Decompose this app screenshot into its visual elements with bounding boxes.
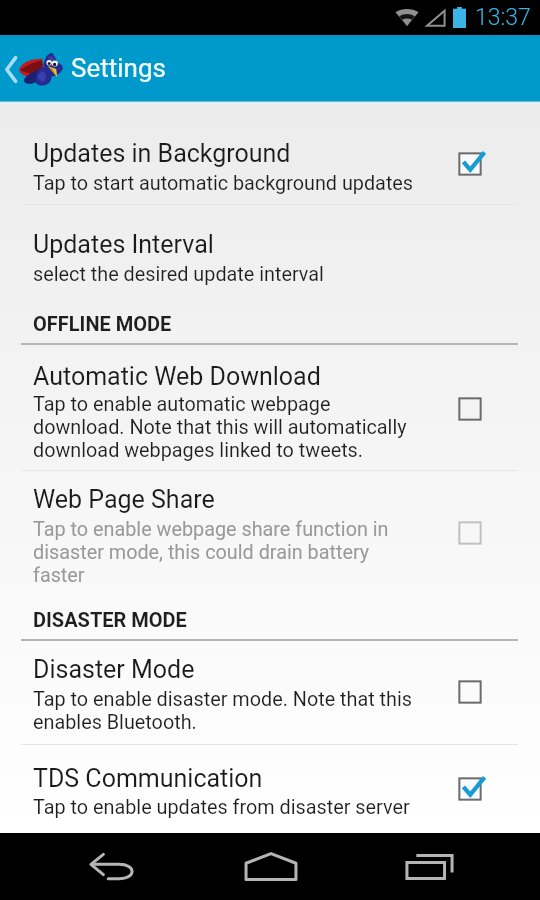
button[interactable]: Automatic Web Download [0, 362, 540, 462]
staticText: OFFLINE MODE [33, 312, 172, 335]
staticText: Automatic Web Download [33, 362, 321, 391]
button[interactable]: Back [52, 833, 173, 900]
staticText: Tap to enable disaster mode. Note that t… [33, 688, 421, 734]
button[interactable]: TDS Communication [0, 764, 540, 819]
staticText: Disaster Mode [33, 655, 195, 684]
staticText: Updates Interval [33, 230, 214, 259]
staticText: Tap to enable updates from disaster serv… [33, 796, 410, 819]
staticText: Tap to start automatic background update… [33, 172, 414, 195]
staticText: Updates in Background [33, 139, 291, 168]
staticText: DISASTER MODE [33, 608, 187, 631]
button[interactable]: Recent apps [369, 833, 490, 900]
staticText: 13:37 [475, 4, 531, 31]
staticText: Tap to enable automatic webpage download… [33, 393, 421, 462]
button[interactable]: Updates Interval [0, 230, 540, 286]
button[interactable]: Navigate up [0, 35, 540, 104]
staticText: Tap to enable webpage share function in … [33, 518, 421, 587]
staticText: select the desired update interval [33, 263, 324, 286]
button[interactable]: Web Page Share [0, 485, 540, 587]
staticText: TDS Communication [33, 764, 263, 793]
button[interactable]: Home [210, 833, 331, 900]
button[interactable]: Updates in Background [0, 139, 540, 195]
staticText: Web Page Share [33, 485, 215, 514]
button[interactable]: Disaster Mode [0, 655, 540, 734]
staticText: Settings [71, 53, 166, 83]
